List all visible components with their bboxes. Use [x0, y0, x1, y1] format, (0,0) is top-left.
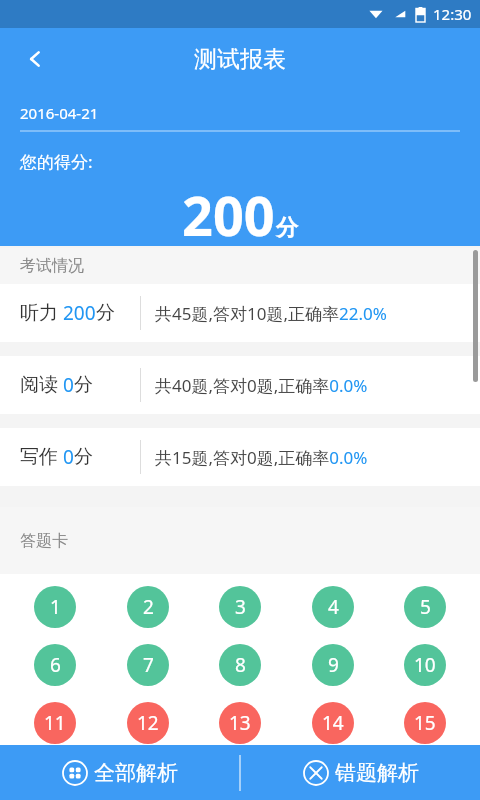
staticText: 2: [143, 594, 154, 620]
staticText: 共15题,答对0题,正确率0.0%: [155, 446, 368, 469]
staticText: 12: [137, 710, 159, 736]
staticText: 0: [63, 444, 74, 470]
staticText: 分: [96, 301, 115, 325]
staticText: 共40题,答对0题,正确率0.0%: [155, 374, 368, 397]
staticText: 听力: [20, 301, 58, 325]
staticText: 5: [420, 594, 431, 620]
button[interactable]: 3: [219, 586, 261, 628]
staticText: 0: [63, 372, 74, 398]
staticText: 2016-04-21: [20, 103, 99, 123]
staticText: 15: [414, 710, 436, 736]
staticText: 3: [235, 594, 246, 620]
button[interactable]: 13: [219, 702, 261, 744]
button[interactable]: 1: [34, 586, 76, 628]
staticText: 分: [74, 373, 93, 397]
button[interactable]: 9: [312, 644, 354, 686]
button[interactable]: 8: [219, 644, 261, 686]
staticText: 200: [63, 300, 96, 326]
staticText: 测试报表: [194, 45, 286, 74]
button[interactable]: 5: [404, 586, 446, 628]
button[interactable]: 4: [312, 586, 354, 628]
staticText: 全部解析: [94, 760, 178, 786]
staticText: 7: [143, 652, 154, 678]
staticText: 9: [328, 652, 339, 678]
staticText: 写作: [20, 445, 58, 469]
staticText: 分: [74, 445, 93, 469]
staticText: 您的得分:: [20, 150, 93, 173]
staticText: 1: [50, 594, 61, 620]
staticText: 答题卡: [20, 531, 68, 551]
button[interactable]: 15: [404, 702, 446, 744]
staticText: 14: [322, 710, 344, 736]
staticText: 13: [229, 710, 251, 736]
button[interactable]: 写作: [0, 428, 480, 486]
button[interactable]: 阅读: [0, 356, 480, 414]
button[interactable]: 错题解析: [241, 745, 480, 800]
staticText: 11: [44, 710, 66, 736]
button[interactable]: 2: [127, 586, 169, 628]
button[interactable]: 11: [34, 702, 76, 744]
button[interactable]: 10: [404, 644, 446, 686]
staticText: 考试情况: [20, 256, 84, 276]
staticText: 错题解析: [335, 760, 419, 786]
button[interactable]: 6: [34, 644, 76, 686]
staticText: 共45题,答对10题,正确率22.0%: [155, 302, 387, 325]
button[interactable]: 全部解析: [0, 745, 239, 800]
staticText: 4: [328, 594, 339, 620]
staticText: 6: [50, 652, 61, 678]
staticText: 200: [182, 178, 275, 246]
staticText: 分: [276, 214, 298, 242]
button[interactable]: 听力: [0, 284, 480, 342]
staticText: 12:30: [433, 4, 472, 24]
staticText: 10: [414, 652, 436, 678]
button[interactable]: 7: [127, 644, 169, 686]
button[interactable]: 14: [312, 702, 354, 744]
staticText: 阅读: [20, 373, 58, 397]
staticText: 8: [235, 652, 246, 678]
button[interactable]: Back: [12, 35, 60, 83]
button[interactable]: 12: [127, 702, 169, 744]
